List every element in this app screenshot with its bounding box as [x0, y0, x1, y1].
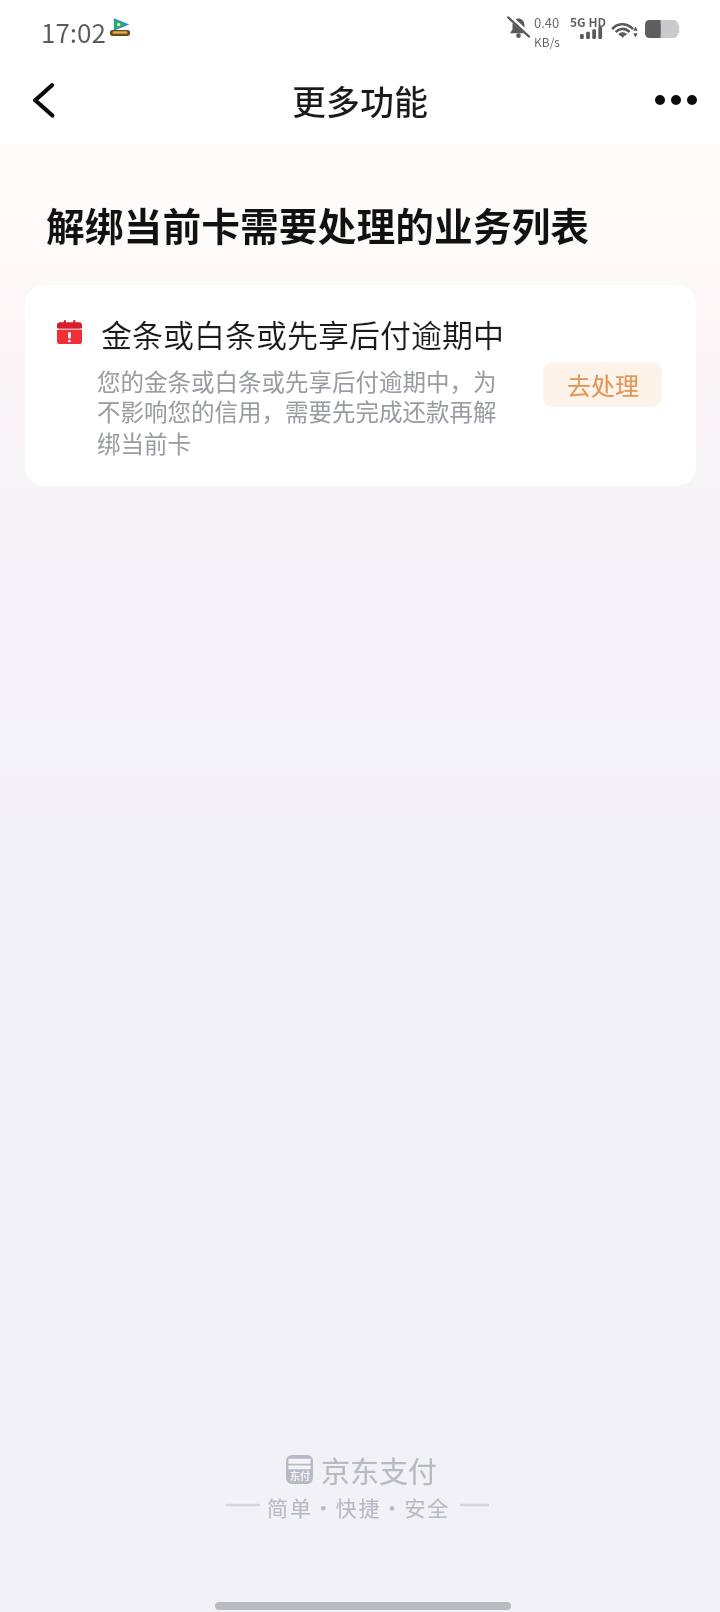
staticText: 金条或白条或先享后付逾期中: [101, 311, 504, 356]
staticText: 5G HD: [570, 13, 607, 30]
staticText: KB/s: [534, 33, 560, 50]
staticText: 东付: [290, 1468, 310, 1482]
staticText: 您的金条或白条或先享后付逾期中，为: [97, 364, 497, 398]
staticText: 绑当前卡: [97, 426, 191, 460]
staticText: 解绑当前卡需要处理的业务列表: [46, 196, 590, 252]
button[interactable]: 去处理: [543, 362, 662, 407]
button[interactable]: 金条或白条或先享后付逾期中: [25, 285, 696, 486]
button[interactable]: Back: [12, 69, 74, 131]
staticText: 不影响您的信用，需要先完成还款再解: [97, 394, 497, 428]
staticText: 京东支付: [321, 1449, 438, 1491]
staticText: 简单·快捷·安全: [267, 1492, 451, 1522]
button[interactable]: More options: [644, 69, 706, 131]
staticText: 更多功能: [292, 76, 428, 125]
staticText: 17:02: [41, 13, 106, 51]
staticText: 0.40: [534, 13, 560, 32]
staticText: 去处理: [567, 367, 639, 402]
